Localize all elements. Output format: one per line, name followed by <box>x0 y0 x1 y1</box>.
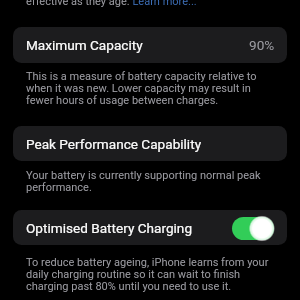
staticText: Maximum Capacity <box>26 37 143 53</box>
button[interactable]: Optimised Battery Charging <box>13 210 287 245</box>
button[interactable]: effective as they age. Learn more... <box>26 0 197 8</box>
staticText: Your battery is currently supporting nor… <box>26 170 274 194</box>
staticText: To reduce battery ageing, iPhone learns … <box>26 257 274 293</box>
button[interactable]: Maximum Capacity <box>13 27 287 63</box>
button[interactable]: Peak Performance Capability <box>13 126 287 161</box>
staticText: Peak Performance Capability <box>26 136 202 152</box>
staticText: 90% <box>249 37 275 53</box>
staticText: Optimised Battery Charging <box>26 220 193 236</box>
button[interactable]: Optimised Battery Charging, on <box>232 217 274 240</box>
staticText: This is a measure of battery capacity re… <box>26 71 274 107</box>
